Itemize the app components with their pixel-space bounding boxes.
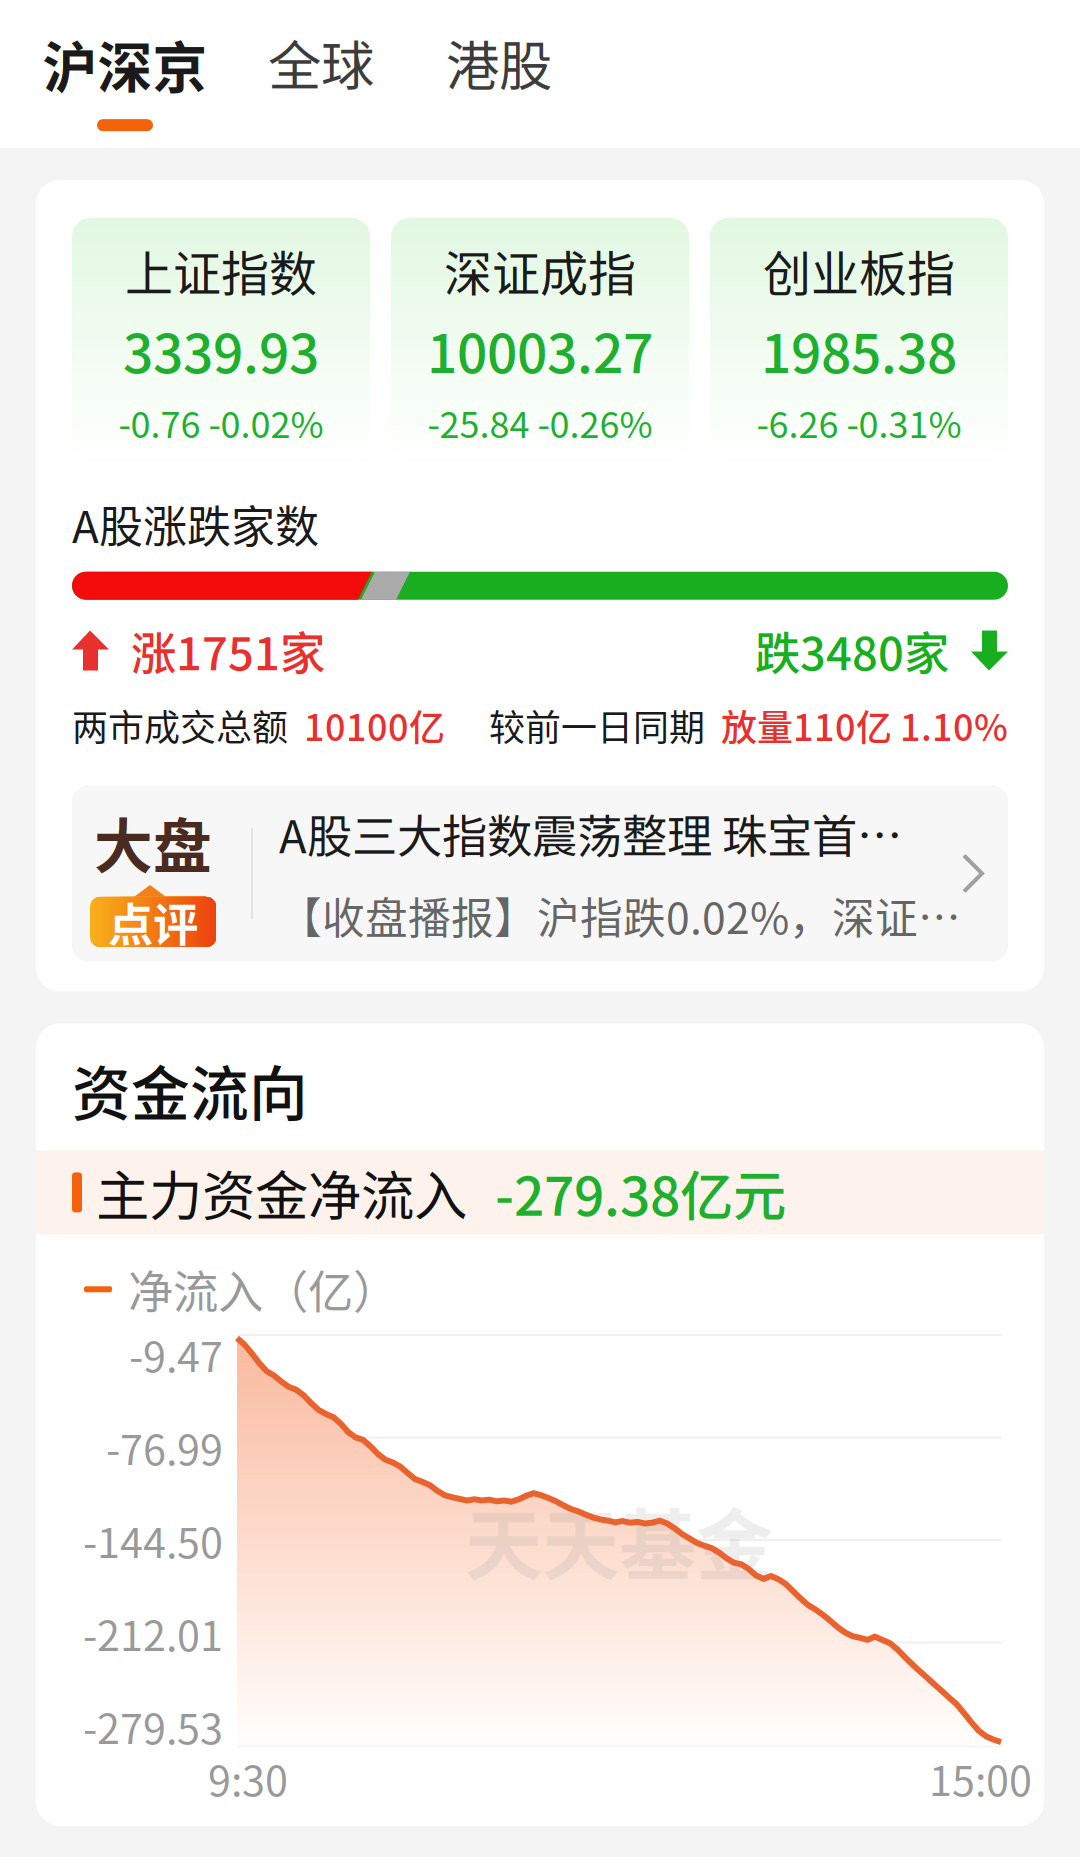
staticText: 上证指数	[125, 236, 317, 305]
staticText: 沪深京	[42, 24, 207, 103]
staticText: 天天基金	[465, 1484, 773, 1596]
staticText: 点评	[108, 889, 198, 955]
button[interactable]: 上证指数	[72, 218, 369, 458]
staticText: 港股	[446, 24, 552, 101]
staticText: 9:30	[208, 1748, 288, 1808]
staticText: -0.76 -0.02%	[118, 396, 323, 448]
staticText: 深证成指	[444, 236, 636, 305]
button[interactable]: 创业板指	[710, 218, 1007, 458]
button[interactable]: 港股	[410, 0, 588, 172]
staticText: A股涨跌家数	[72, 492, 319, 556]
staticText: 较前一日同期	[489, 699, 705, 751]
button[interactable]: 深证成指	[391, 218, 688, 458]
staticText: 创业板指	[763, 236, 955, 305]
staticText: 大盘	[94, 800, 212, 885]
staticText: 【收盘播报】沪指跌0.02%，深证…	[279, 884, 961, 946]
staticText: 放量110亿 1.10%	[721, 699, 1008, 751]
staticText: 主力资金净流入	[96, 1154, 467, 1231]
staticText: 涨1751家	[131, 618, 325, 683]
staticText: 净流入（亿）	[128, 1256, 398, 1322]
staticText: 1985.38	[761, 311, 957, 388]
staticText: 全球	[268, 24, 374, 101]
button[interactable]: 沪深京	[18, 0, 232, 172]
button[interactable]: 大盘	[72, 785, 1008, 961]
staticText: 跌3480家	[755, 618, 949, 683]
staticText: 两市成交总额	[72, 699, 288, 751]
staticText: -279.53	[83, 1696, 223, 1756]
staticText: 15:00	[929, 1748, 1032, 1808]
staticText: -9.47	[129, 1324, 223, 1384]
staticText: -279.38亿元	[495, 1154, 786, 1231]
staticText: -6.26 -0.31%	[756, 396, 961, 448]
staticText: -25.84 -0.26%	[427, 396, 652, 448]
staticText: 资金流向	[72, 1047, 308, 1132]
staticText: 3339.93	[123, 311, 319, 388]
staticText: -212.01	[83, 1603, 223, 1663]
button[interactable]: 全球	[232, 0, 410, 172]
staticText: 10003.27	[427, 311, 653, 388]
staticText: -76.99	[106, 1417, 223, 1477]
staticText: 10100亿	[304, 699, 445, 751]
staticText: -144.50	[83, 1510, 223, 1570]
staticText: A股三大指数震荡整理 珠宝首…	[279, 801, 902, 866]
